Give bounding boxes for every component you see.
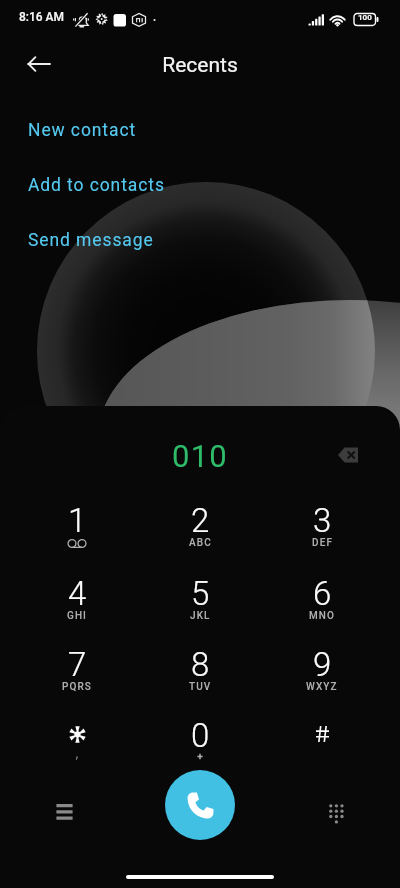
staticText: Add to contacts [28,175,165,196]
button[interactable]: Send message [28,223,154,257]
staticText: Send message [28,230,154,251]
staticText: GHI [67,610,88,622]
staticText: 6 [313,574,332,613]
staticText: 1 [68,501,87,540]
staticText: 100 [358,13,372,22]
button[interactable]: 8 [142,645,258,715]
staticText: Recents [0,53,400,78]
staticText: JKL [190,610,211,622]
button[interactable]: 3 [264,501,380,571]
button[interactable]: 5 [142,574,258,644]
button[interactable]: 6 [264,574,380,644]
button[interactable] [264,716,380,786]
staticText: MNO [309,610,336,622]
staticText: DEF [312,537,333,549]
button[interactable]: 4 [19,574,135,644]
button[interactable]: Call [165,770,235,840]
staticText: New contact [28,120,137,141]
staticText: PQRS [62,681,93,693]
staticText: 4 [68,574,87,613]
staticText: 2 [191,501,210,540]
button[interactable]: 9 [264,645,380,715]
button[interactable]: 1 [19,501,135,571]
button[interactable]: Call log [44,792,84,832]
button[interactable]: New contact [28,113,137,147]
staticText: 8:16 AM [19,10,65,24]
staticText: 010 [0,438,400,474]
staticText: 0 [191,716,210,755]
button[interactable]: Back [19,44,59,84]
button[interactable]: Keypad [316,794,356,834]
staticText: 5 [191,574,210,613]
staticText: TUV [189,681,212,693]
button[interactable] [19,716,135,786]
button[interactable]: Add to contacts [28,168,165,202]
staticText: 9 [313,645,332,684]
staticText: WXYZ [306,681,338,693]
staticText: 3 [313,501,332,540]
button[interactable]: 2 [142,501,258,571]
button[interactable]: 0 [142,716,258,786]
button[interactable]: Backspace [329,436,367,474]
staticText: 7 [68,645,87,684]
staticText: 8 [191,645,210,684]
button[interactable]: 7 [19,645,135,715]
staticText: ABC [189,537,212,549]
